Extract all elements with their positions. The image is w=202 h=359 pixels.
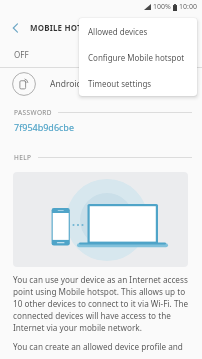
- staticText: PASSWORD: [14, 108, 52, 117]
- button[interactable]: Configure Mobile hotspot: [79, 44, 197, 70]
- staticText: 7f954b9d6cbe: [14, 121, 74, 133]
- staticText: You can create an allowed device profile…: [13, 341, 193, 352]
- staticText: You can use your device as an Internet a…: [13, 274, 190, 333]
- button[interactable]: Timeout settings: [79, 70, 197, 96]
- button[interactable]: Navigate up: [0, 14, 30, 41]
- staticText: 10:00: [179, 2, 197, 12]
- staticText: MOBILE HOTSPOT: [30, 22, 103, 33]
- staticText: Timeout settings: [88, 78, 152, 89]
- button[interactable]: Android_bf66: [0, 68, 202, 99]
- button[interactable]: OFF: [0, 41, 202, 67]
- staticText: HELP: [14, 153, 32, 162]
- staticText: OFF: [14, 49, 29, 60]
- staticText: Android_bf66: [50, 78, 104, 90]
- staticText: 100%: [153, 2, 171, 12]
- staticText: Configure Mobile hotspot: [88, 52, 185, 63]
- button[interactable]: Allowed devices: [79, 18, 197, 44]
- staticText: Allowed devices: [88, 26, 148, 37]
